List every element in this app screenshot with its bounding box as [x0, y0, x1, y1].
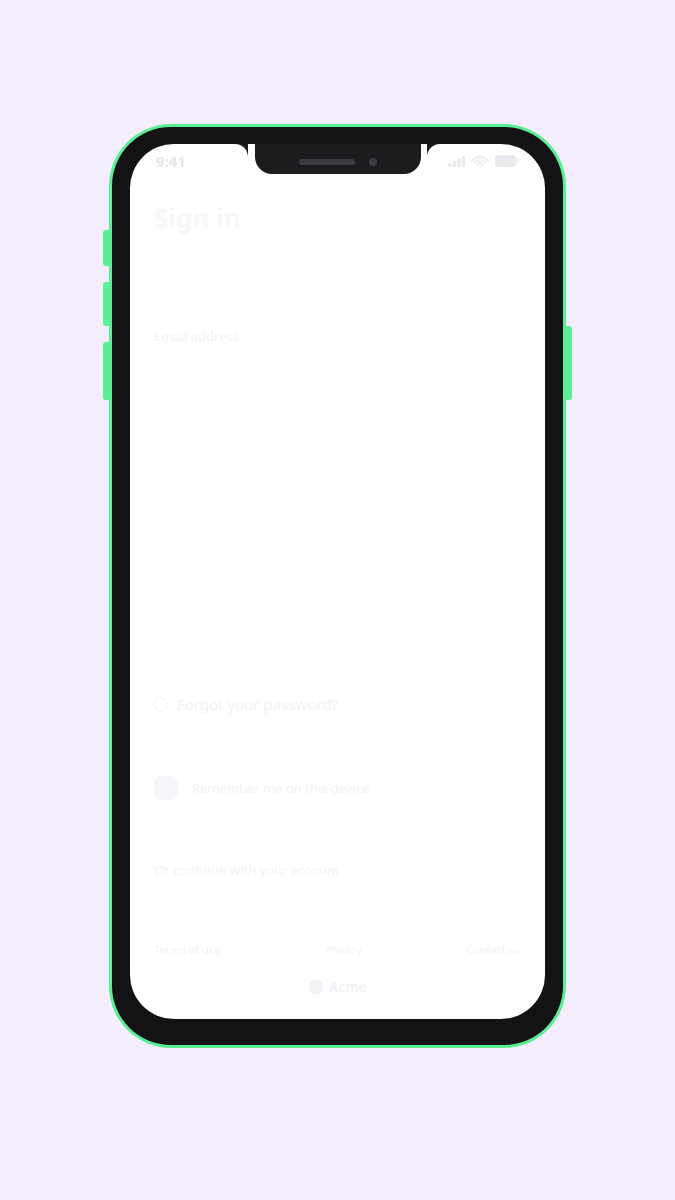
button[interactable]: Terms of use — [154, 937, 221, 961]
staticText: Contact us — [466, 942, 521, 957]
staticText: Privacy — [325, 942, 362, 957]
staticText: Remember me on this device — [192, 779, 370, 797]
button[interactable]: Or continue with your account — [154, 861, 340, 879]
staticText: Acme — [329, 977, 367, 996]
button[interactable]: Sign in — [154, 200, 241, 235]
staticText: Forgot your password? — [177, 694, 339, 714]
staticText: Email address — [154, 327, 239, 345]
staticText: 9:41 — [156, 151, 186, 171]
button[interactable]: Privacy — [325, 937, 362, 961]
button[interactable]: Contact us — [466, 937, 521, 961]
staticText: Terms of use — [154, 942, 221, 957]
